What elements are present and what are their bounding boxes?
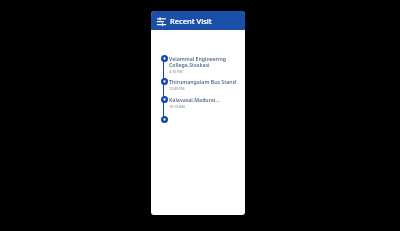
button[interactable]: Kalavasal,Madurai... — [169, 96, 243, 109]
button[interactable]: Velammal Engineering College,Sivakasi — [169, 55, 243, 74]
button[interactable]: Filter — [156, 16, 166, 26]
staticText: 12:40 PM — [169, 86, 185, 91]
staticText: Recent Visit — [170, 16, 212, 26]
staticText: Thirumangalam Bus Stand — [169, 78, 236, 85]
staticText: 10:10 AM — [169, 104, 185, 109]
staticText: Kalavasal,Madurai... — [169, 96, 220, 103]
button[interactable]: Filter — [151, 11, 245, 30]
staticText: Velammal Engineering College,Sivakasi — [169, 55, 227, 68]
button[interactable]: Thirumangalam Bus Stand — [169, 78, 243, 91]
staticText: 4:10 PM — [169, 69, 183, 74]
